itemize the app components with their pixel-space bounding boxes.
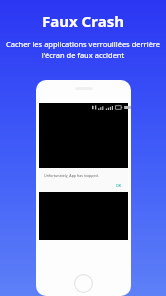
staticText: Cacher les applications verrouillées der… <box>4 39 162 60</box>
staticText: Faux Crash <box>42 11 124 31</box>
staticText: OK <box>116 183 122 188</box>
staticText: Unfortunately, App has stopped. <box>44 173 99 178</box>
button[interactable]: OK <box>114 182 124 189</box>
button[interactable]: Home <box>74 274 93 293</box>
